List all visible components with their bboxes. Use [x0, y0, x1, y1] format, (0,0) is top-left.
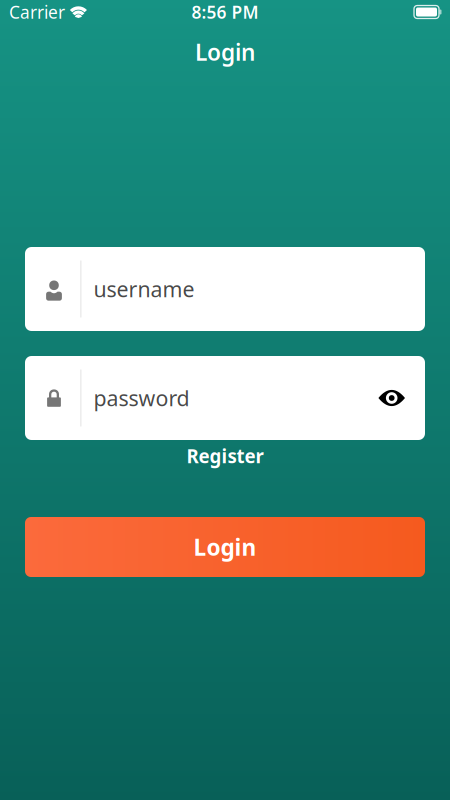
- button[interactable]: Login: [25, 517, 425, 577]
- staticText: password: [94, 384, 190, 412]
- staticText: Carrier: [9, 0, 65, 23]
- staticText: 8:56 PM: [191, 0, 258, 23]
- staticText: username: [94, 275, 195, 303]
- staticText: Login: [195, 37, 255, 67]
- button[interactable]: Register: [25, 444, 425, 468]
- button[interactable]: Show password: [378, 389, 405, 407]
- staticText: Login: [193, 532, 256, 562]
- staticText: Register: [186, 444, 263, 468]
